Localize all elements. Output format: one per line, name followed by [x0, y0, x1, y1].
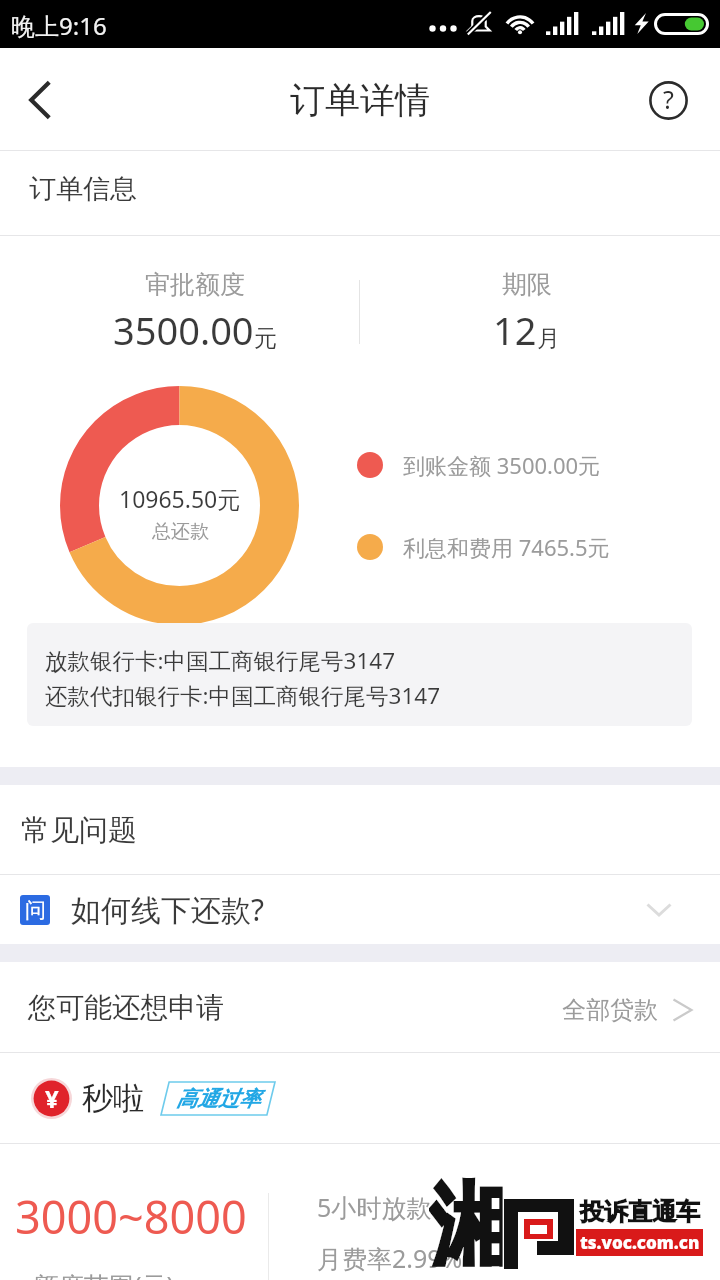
staticText: 湘 — [429, 1170, 503, 1267]
staticText: 如何线下还款? — [71, 889, 265, 930]
staticText: 3500.00 — [113, 304, 254, 356]
staticText: 还款代扣银行卡:中国工商银行尾号3147 — [45, 680, 441, 711]
button[interactable]: ¥ — [0, 1053, 720, 1144]
button[interactable]: Back — [8, 68, 72, 132]
staticText: ts.voc.com.cn — [580, 1231, 700, 1254]
button[interactable]: 问 — [0, 875, 720, 944]
staticText: 到账金额 3500.00元 — [403, 450, 601, 480]
staticText: 全部贷款 — [562, 995, 658, 1025]
staticText: 额度范围(元) — [34, 1268, 175, 1280]
staticText: 总还款 — [152, 520, 209, 544]
staticText: 利息和费用 7465.5元 — [403, 532, 610, 562]
staticText: 订单详情 — [290, 78, 430, 122]
staticText: 10965.50元 — [119, 483, 241, 514]
staticText: 您可能还想申请 — [28, 990, 224, 1025]
staticText: 元 — [254, 324, 277, 353]
staticText: 常见问题 — [21, 812, 137, 849]
staticText: ? — [663, 82, 674, 116]
button[interactable]: Help — [636, 68, 700, 132]
button[interactable]: 您可能还想申请 — [0, 962, 720, 1053]
staticText: 月费率2.99% — [317, 1241, 463, 1275]
staticText: 晚上9:16 — [11, 9, 107, 42]
staticText: 订单信息 — [29, 172, 137, 206]
staticText: 期限 — [502, 269, 552, 300]
staticText: 秒啦 — [82, 1079, 144, 1118]
staticText: 投诉直通车 — [580, 1197, 700, 1227]
staticText: 问 — [25, 897, 46, 923]
staticText: ¥ — [45, 1082, 59, 1115]
staticText: 审批额度 — [145, 269, 245, 300]
staticText: 高通过率 — [176, 1086, 260, 1112]
staticText: 12 — [493, 304, 537, 356]
staticText: 3000~8000 — [15, 1186, 247, 1247]
staticText: 放款银行卡:中国工商银行尾号3147 — [45, 645, 396, 676]
staticText: 5小时放款 — [317, 1190, 432, 1224]
staticText: 月 — [537, 324, 560, 353]
